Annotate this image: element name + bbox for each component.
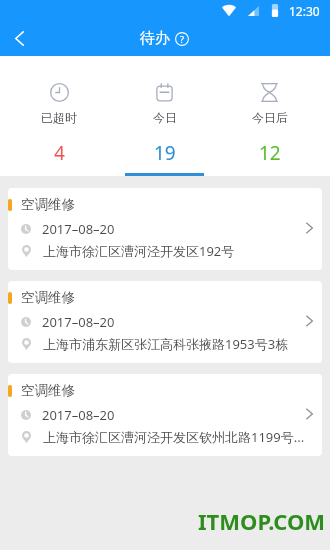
staticText: 空调维修 — [21, 289, 75, 306]
button[interactable]: 已超时 — [6, 56, 112, 176]
staticText: 19 — [154, 140, 176, 166]
staticText: 12 — [259, 140, 281, 166]
staticText: 上海市徐汇区漕河泾开发区钦州北路1199号... — [43, 428, 305, 446]
button[interactable]: 今日后 — [217, 56, 322, 176]
staticText: 今日后 — [252, 110, 288, 125]
staticText: 已超时 — [41, 110, 77, 125]
button[interactable]: Back — [0, 21, 38, 56]
staticText: 2017–08–20 — [42, 220, 115, 238]
button[interactable]: Help — [175, 32, 189, 46]
staticText: 今日 — [153, 110, 177, 125]
staticText: 空调维修 — [21, 196, 75, 213]
staticText: ITMOP.COM — [198, 506, 326, 536]
staticText: 上海市徐汇区漕河泾开发区192号 — [43, 242, 235, 260]
button[interactable]: 今日 — [112, 56, 217, 176]
button[interactable]: 空调维修 — [8, 281, 322, 363]
staticText: ? — [180, 33, 184, 45]
button[interactable]: 空调维修 — [8, 188, 322, 270]
staticText: 12:30 — [289, 3, 320, 19]
staticText: 空调维修 — [21, 382, 75, 399]
staticText: 上海市浦东新区张江高科张掖路1953号3栋 — [43, 335, 289, 353]
staticText: 4 — [54, 140, 65, 166]
staticText: 2017–08–20 — [42, 406, 115, 424]
button[interactable]: 空调维修 — [8, 374, 322, 456]
staticText: 2017–08–20 — [42, 313, 115, 331]
staticText: 待办 — [140, 29, 170, 48]
